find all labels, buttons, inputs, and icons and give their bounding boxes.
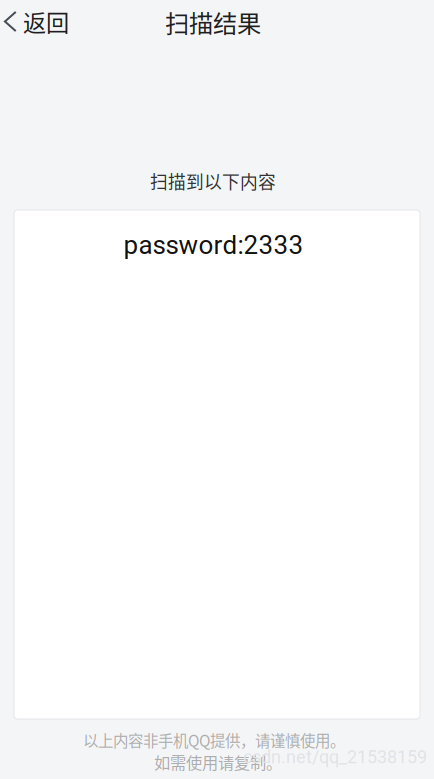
staticText: 返回 [23,5,69,38]
staticText: password:2333 [123,230,303,260]
staticText: csdn.net/qq_21538159 [243,746,427,768]
staticText: 扫描结果 [165,4,261,39]
staticText: 如需使用请复制。 [154,750,282,774]
button[interactable]: password:2333 [14,210,420,719]
staticText: 以上内容非手机QQ提供，请谨慎使用。 [83,729,345,751]
button[interactable]: 返回 [0,0,81,48]
staticText: 扫描到以下内容 [150,168,276,194]
